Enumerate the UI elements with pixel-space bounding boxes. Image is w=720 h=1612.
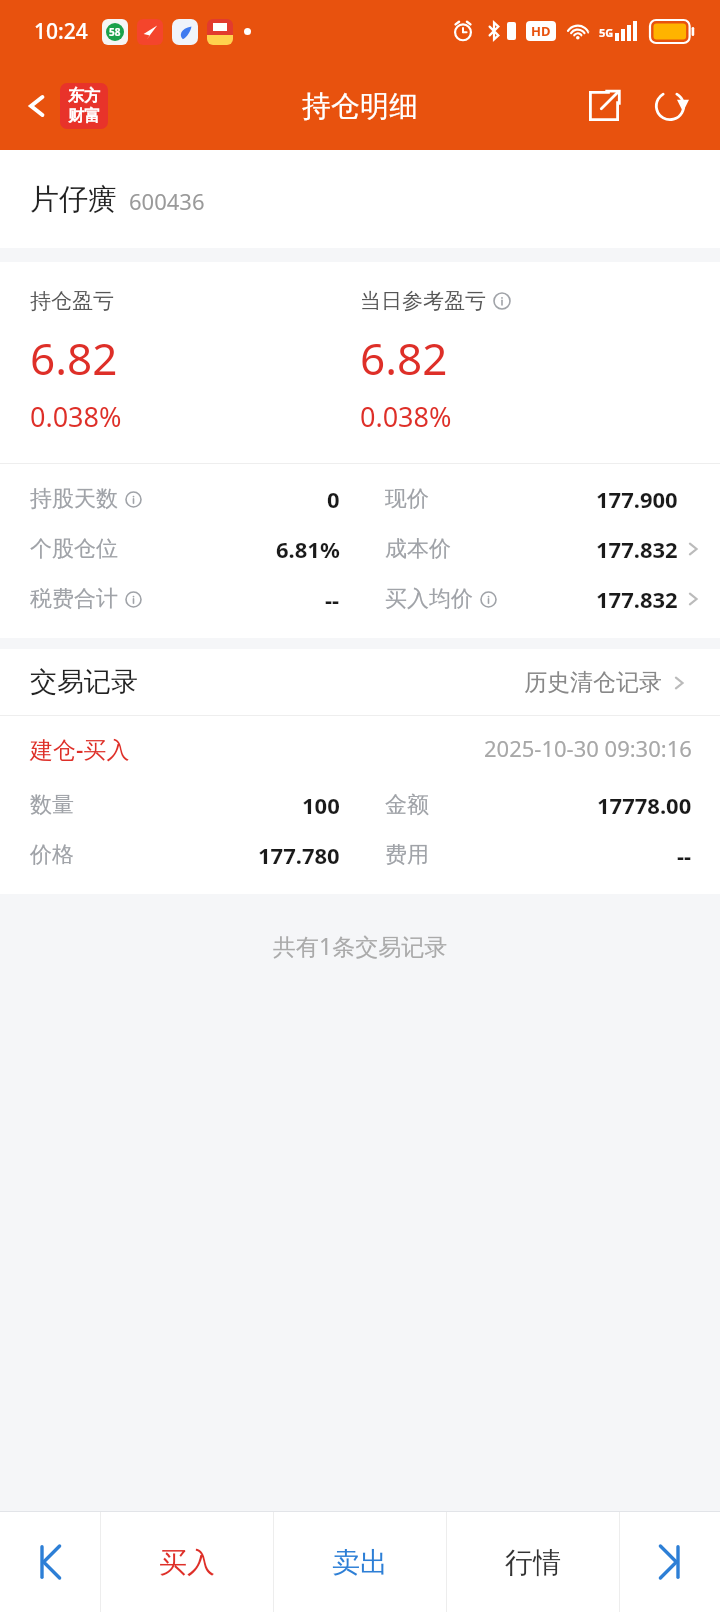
staticText: 交易记录 (30, 665, 138, 699)
staticText: 片仔癀 (30, 181, 117, 218)
staticText: 6.82 (360, 328, 448, 388)
staticText: 个股仓位 (30, 535, 118, 563)
staticText: HD (531, 22, 551, 40)
button[interactable]: 下一只 (620, 1512, 720, 1612)
staticText: 2025-10-30 09:30:16 (484, 733, 692, 763)
staticText: 东方 (68, 86, 100, 106)
staticText: 费用 (385, 841, 429, 869)
button[interactable]: 税费合计 (0, 574, 360, 624)
staticText: 金额 (385, 791, 429, 819)
staticText: 177.832 (596, 534, 678, 564)
button[interactable]: 返回 (14, 75, 116, 137)
button[interactable]: 买入均价 (360, 574, 720, 624)
staticText: 0.038% (360, 398, 452, 435)
staticText: 6.82 (30, 328, 118, 388)
button[interactable]: 分享 (578, 80, 630, 132)
staticText: 买入均价 (385, 585, 473, 613)
button[interactable]: 建仓-买入 (0, 716, 720, 780)
staticText: 600436 (129, 186, 205, 216)
staticText: 177.832 (596, 584, 678, 614)
staticText: 17778.00 (597, 790, 692, 820)
button[interactable]: 个股仓位 (0, 524, 360, 574)
staticText: 买入 (159, 1545, 215, 1580)
staticText: 税费合计 (30, 585, 118, 613)
staticText: 财富 (68, 106, 100, 126)
staticText: -- (325, 584, 340, 614)
staticText: 共有1条交易记录 (273, 930, 448, 961)
staticText: 177.900 (596, 484, 678, 514)
button[interactable]: 持股天数 (0, 474, 360, 524)
button[interactable]: 刷新 (644, 80, 696, 132)
button[interactable]: 现价 (360, 474, 720, 524)
staticText: -- (677, 840, 692, 870)
staticText: 数量 (30, 791, 74, 819)
staticText: 成本价 (385, 535, 451, 563)
button[interactable]: 成本价 (360, 524, 720, 574)
staticText: 建仓-买入 (30, 733, 130, 764)
staticText: 10:24 (34, 17, 88, 46)
staticText: 58 (109, 25, 121, 39)
staticText: 持仓盈亏 (30, 288, 114, 314)
staticText: 当日参考盈亏 (360, 288, 486, 314)
button[interactable]: 片仔癀 (0, 150, 720, 248)
staticText: 6.81% (276, 534, 340, 564)
staticText: 100 (302, 790, 340, 820)
staticText: 177.780 (258, 840, 340, 870)
staticText: 历史清仓记录 (524, 668, 662, 697)
staticText: 现价 (385, 485, 429, 513)
button[interactable]: 卖出 (274, 1512, 446, 1612)
staticText: 持股天数 (30, 485, 118, 513)
staticText: 价格 (30, 841, 74, 869)
staticText: 0.038% (30, 398, 122, 435)
staticText: 行情 (505, 1545, 561, 1580)
button[interactable]: 行情 (447, 1512, 619, 1612)
staticText: 持仓明细 (302, 88, 418, 125)
staticText: 卖出 (332, 1545, 388, 1580)
button[interactable]: 上一只 (0, 1512, 100, 1612)
button[interactable]: 买入 (101, 1512, 273, 1612)
staticText: 0 (327, 484, 340, 514)
button[interactable]: 历史清仓记录 (518, 662, 696, 703)
staticText: 5G (599, 25, 614, 40)
